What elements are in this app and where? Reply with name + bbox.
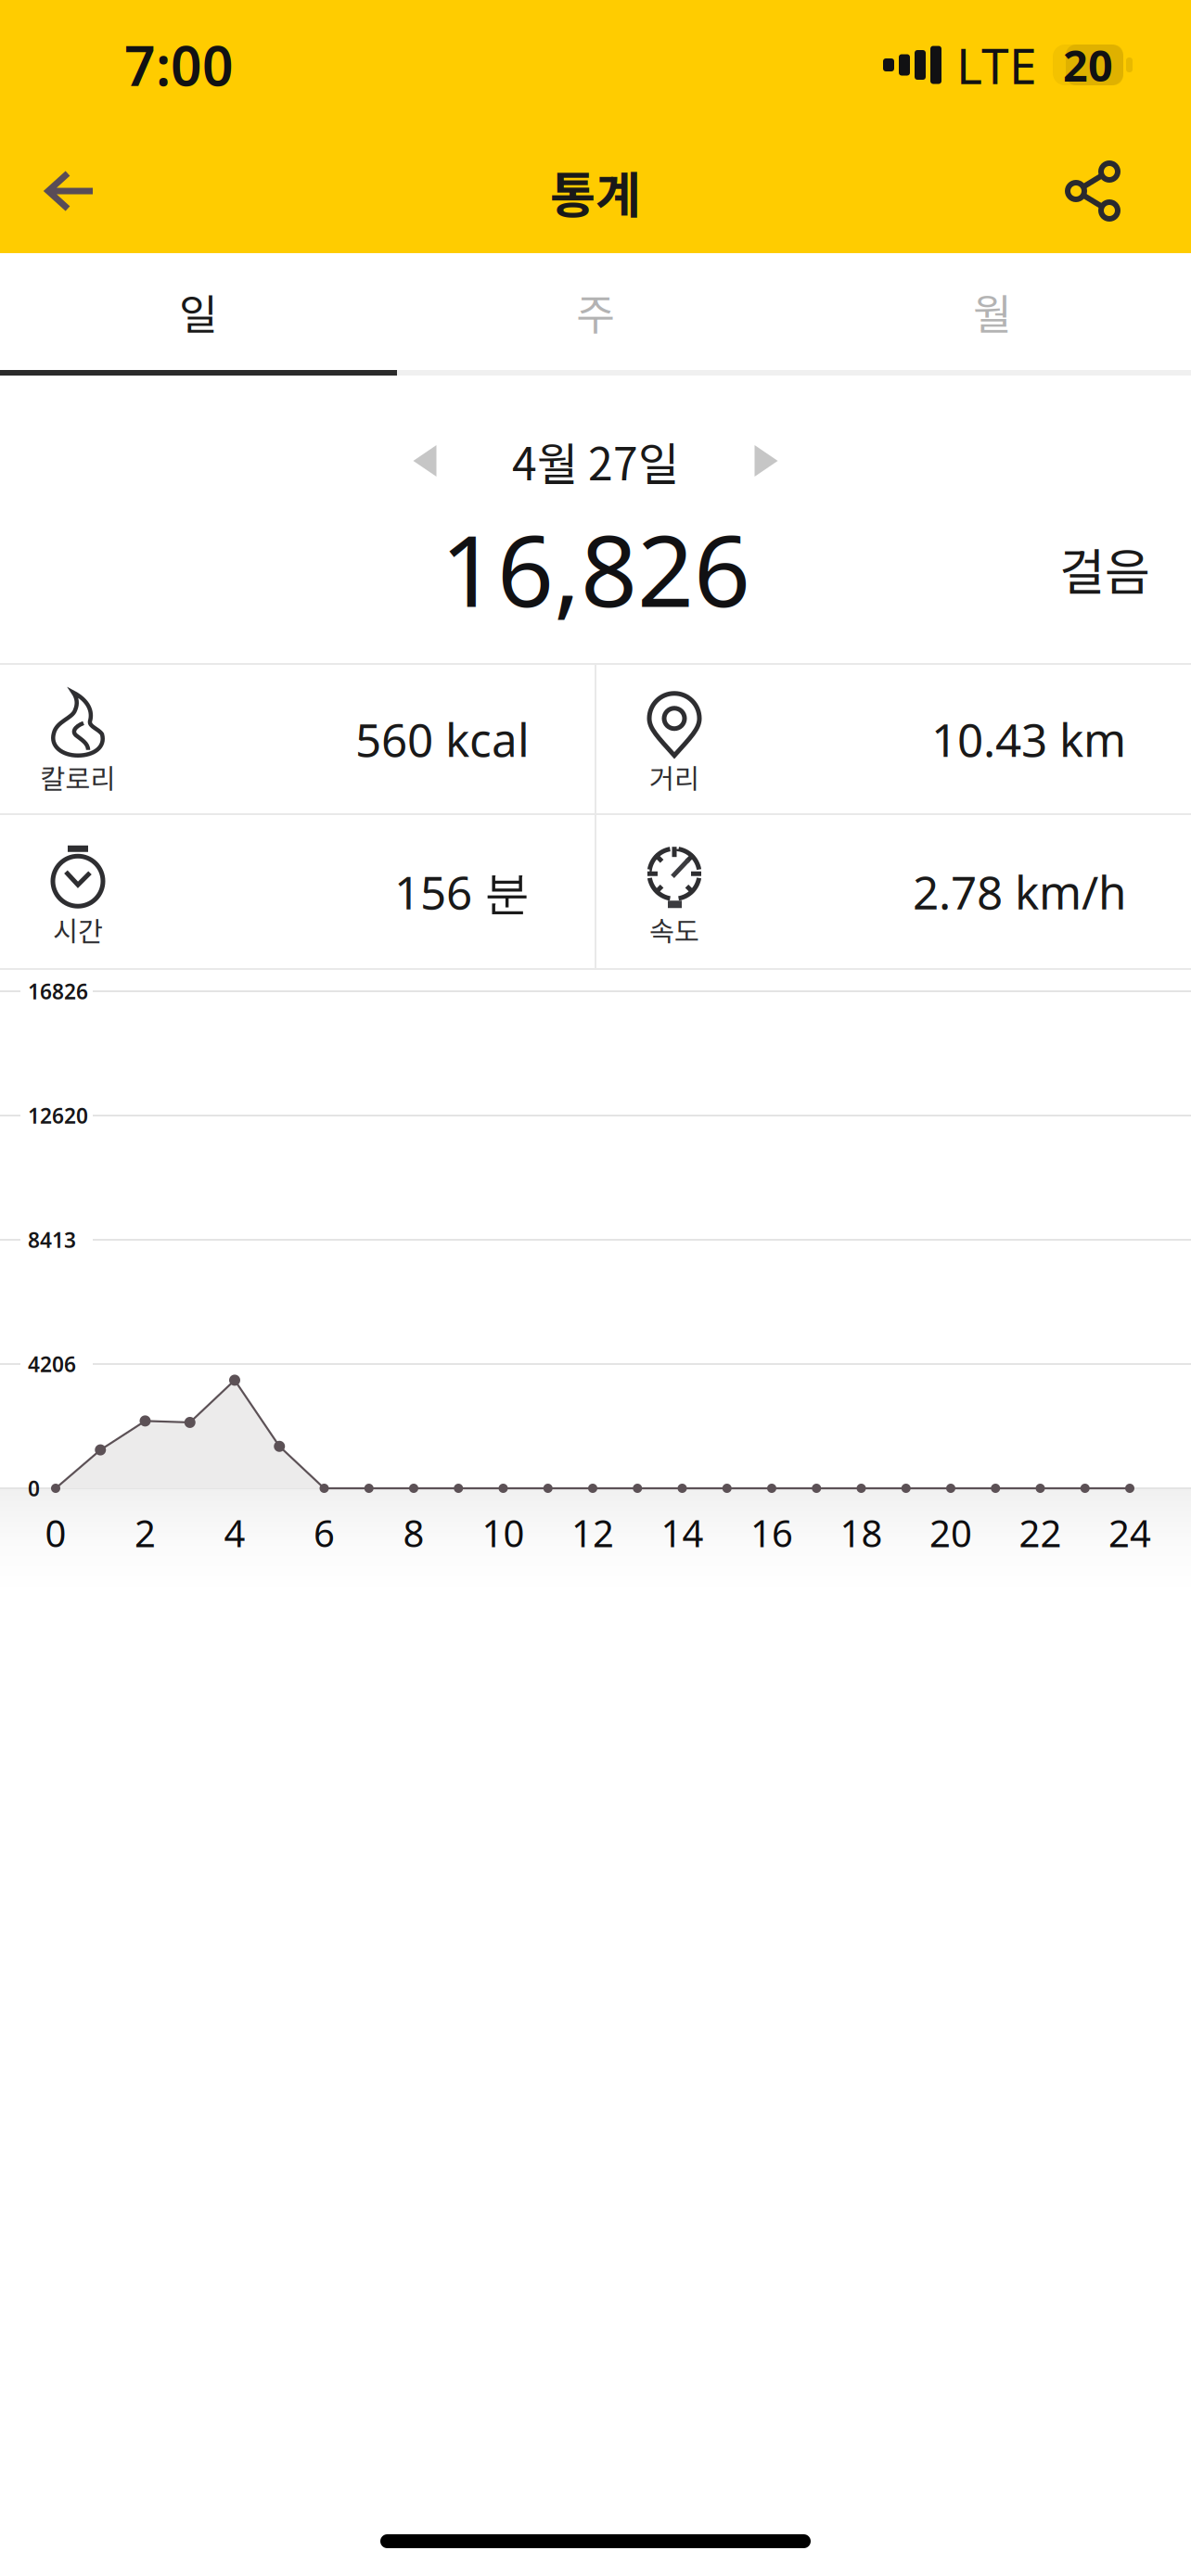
- button[interactable]: 주: [397, 253, 794, 370]
- staticText: 8413: [28, 1226, 76, 1254]
- staticText: 16: [750, 1508, 793, 1557]
- button[interactable]: 시간: [0, 816, 595, 967]
- staticText: 0: [28, 1474, 40, 1502]
- button[interactable]: Previous day: [381, 416, 470, 505]
- staticText: 통계: [550, 156, 641, 227]
- staticText: 18: [840, 1508, 883, 1557]
- staticText: 4: [224, 1508, 245, 1557]
- staticText: 걸음: [1059, 533, 1150, 604]
- staticText: 4206: [28, 1350, 76, 1378]
- staticText: 일: [179, 281, 218, 342]
- staticText: 22: [1019, 1508, 1062, 1557]
- staticText: 속도: [649, 910, 699, 949]
- staticText: 10: [482, 1508, 525, 1557]
- staticText: 16,826: [441, 503, 750, 634]
- staticText: 16826: [28, 977, 88, 1005]
- staticText: 4월 27일: [512, 429, 679, 493]
- staticText: 거리: [649, 757, 699, 797]
- staticText: 2: [134, 1508, 156, 1557]
- staticText: 12620: [28, 1102, 88, 1129]
- button[interactable]: Share: [1032, 130, 1153, 253]
- button[interactable]: 거리: [596, 664, 1191, 814]
- staticText: 시간: [53, 910, 103, 949]
- staticText: 20: [929, 1508, 972, 1557]
- staticText: 10.43 km: [931, 709, 1126, 769]
- staticText: LTE: [956, 32, 1037, 98]
- staticText: 560 kcal: [355, 709, 530, 769]
- staticText: 월: [973, 281, 1012, 342]
- staticText: 주: [576, 281, 615, 342]
- staticText: 7:00: [124, 29, 234, 101]
- staticText: 칼로리: [40, 757, 115, 797]
- staticText: 8: [403, 1508, 424, 1557]
- button[interactable]: 칼로리: [0, 664, 595, 814]
- button[interactable]: 속도: [596, 816, 1191, 967]
- button[interactable]: Back: [10, 130, 131, 253]
- staticText: 6: [314, 1508, 335, 1557]
- staticText: 0: [45, 1508, 66, 1557]
- staticText: 156 분: [394, 861, 530, 922]
- button[interactable]: 일: [0, 253, 397, 370]
- button[interactable]: Next day: [721, 416, 810, 505]
- staticText: 20: [1063, 36, 1113, 94]
- staticText: 24: [1108, 1508, 1151, 1557]
- staticText: 14: [661, 1508, 704, 1557]
- button[interactable]: 월: [794, 253, 1191, 370]
- staticText: 2.78 km/h: [913, 861, 1126, 922]
- staticText: 12: [571, 1508, 614, 1557]
